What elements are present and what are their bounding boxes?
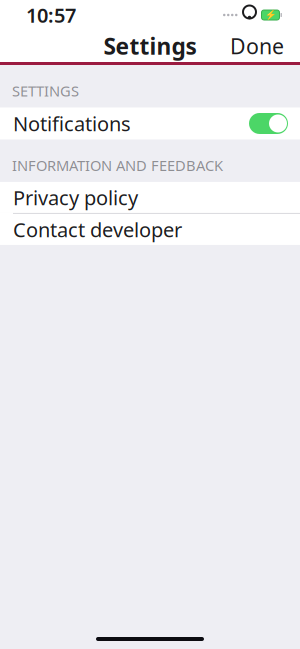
button[interactable]: Contact developer [0,214,300,245]
button[interactable]: Privacy policy [0,182,300,213]
staticText: Settings [103,31,196,61]
staticText: ⚡ [264,10,276,20]
staticText: Privacy policy [13,184,138,211]
staticText: Notifications [13,110,131,137]
staticText: 10:57 [26,2,76,28]
staticText: INFORMATION AND FEEDBACK [12,155,223,175]
button[interactable]: Done [220,26,294,66]
staticText: SETTINGS [12,81,79,100]
staticText: Contact developer [13,216,182,243]
button[interactable]: Notifications [0,107,300,139]
staticText: Done [230,32,284,60]
